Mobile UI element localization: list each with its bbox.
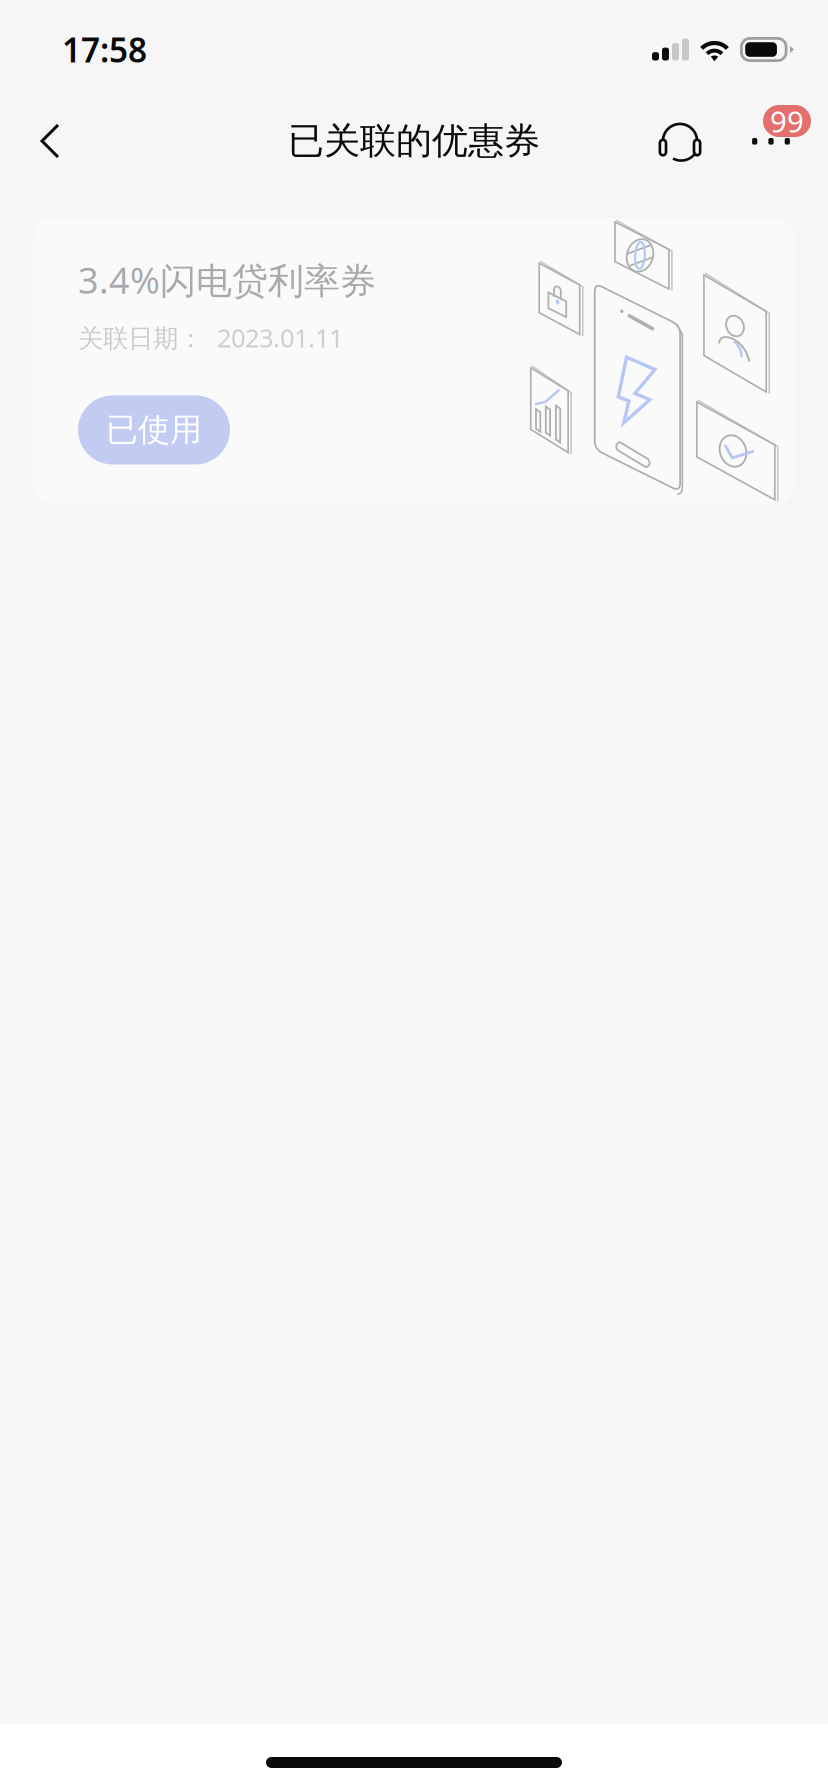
staticText: 关联日期： 2023.01.11	[78, 321, 343, 354]
staticText: 17:58	[62, 27, 147, 72]
staticText: 99	[770, 101, 804, 140]
button[interactable]: More options, 99 notifications	[728, 89, 804, 193]
button[interactable]: 已使用	[78, 395, 230, 464]
staticText: 已使用	[106, 410, 202, 450]
staticText: 已关联的优惠券	[288, 119, 540, 163]
button[interactable]: Back	[0, 89, 100, 193]
staticText: 3.4%闪电贷利率券	[78, 256, 376, 304]
button[interactable]: Customer service	[632, 89, 728, 193]
